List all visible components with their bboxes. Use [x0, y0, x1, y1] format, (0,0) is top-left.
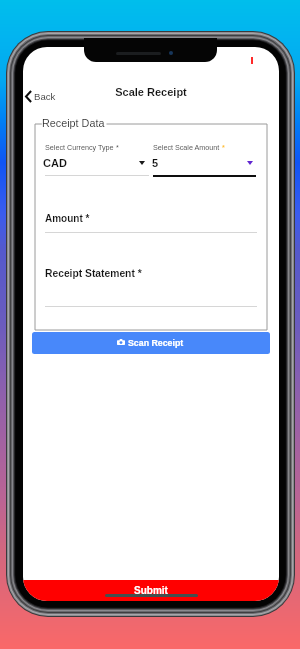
- staticText: Submit: [134, 585, 168, 596]
- staticText: *: [114, 143, 119, 151]
- button[interactable]: Select Currency Type: [45, 143, 149, 177]
- staticText: Receipt Data: [42, 117, 105, 129]
- other: Back: [25, 90, 32, 103]
- button[interactable]: Select Scale Amount: [153, 143, 256, 177]
- staticText: Receipt Statement *: [45, 268, 142, 280]
- staticText: Amount *: [45, 213, 90, 224]
- button[interactable]: Amount *: [45, 213, 257, 234]
- button[interactable]: Receipt Statement *: [45, 268, 257, 308]
- staticText: Back: [34, 91, 56, 102]
- staticText: Select Scale Amount: [153, 143, 220, 151]
- staticText: *: [220, 143, 225, 151]
- staticText: Scan Receipt: [128, 338, 184, 348]
- staticText: Select Currency Type: [45, 143, 114, 151]
- staticText: 5: [152, 157, 159, 169]
- staticText: CAD: [43, 157, 67, 169]
- button[interactable]: Submit: [23, 580, 279, 601]
- staticText: Scale Receipt: [23, 86, 279, 98]
- button[interactable]: Scan Receipt: [32, 332, 270, 354]
- button[interactable]: Back: [23, 85, 62, 107]
